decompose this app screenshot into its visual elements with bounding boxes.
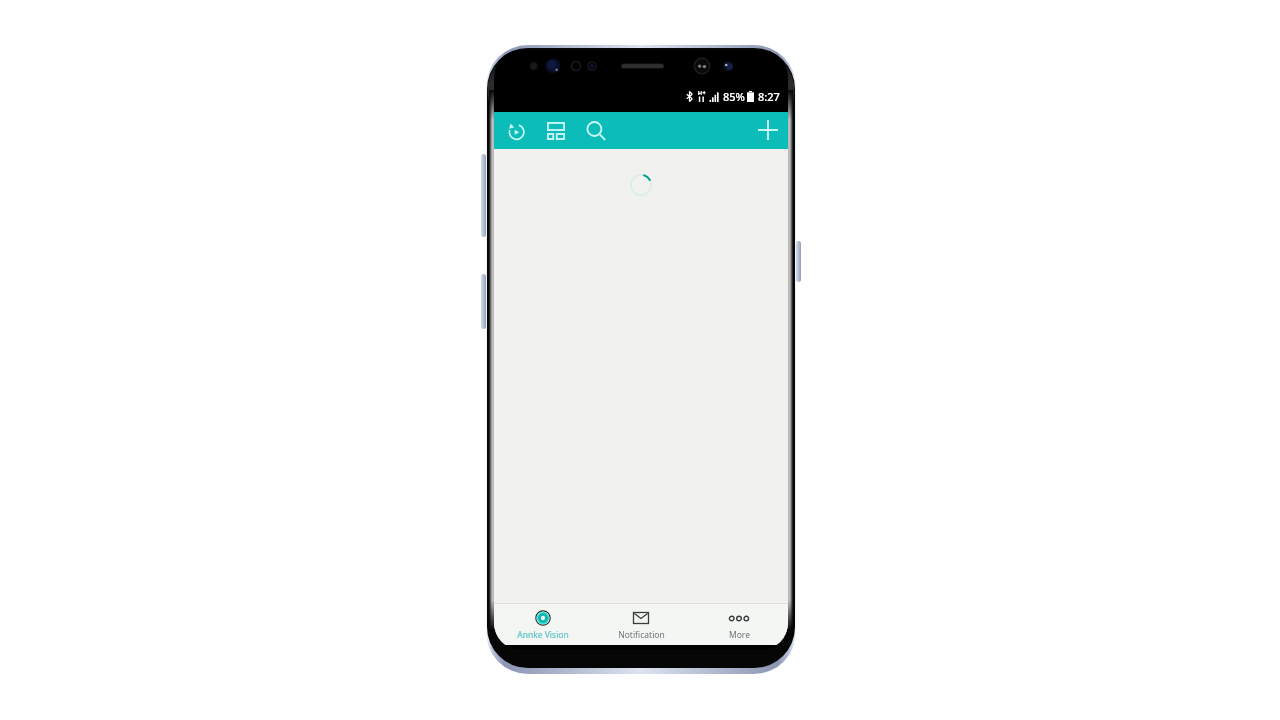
button[interactable]: Notification xyxy=(592,604,690,645)
staticText: Annke Vision xyxy=(517,629,569,641)
staticText: 8:27 xyxy=(758,89,780,104)
button[interactable]: Annke Vision xyxy=(494,604,592,645)
button[interactable]: Playback xyxy=(501,116,530,145)
staticText: 85% xyxy=(723,89,745,104)
staticText: Notification xyxy=(618,629,665,641)
staticText: More xyxy=(729,629,750,641)
button[interactable]: Layout xyxy=(541,116,570,145)
button[interactable]: Add device xyxy=(753,115,783,145)
button[interactable]: More xyxy=(690,604,788,645)
button[interactable]: Search xyxy=(581,116,610,145)
